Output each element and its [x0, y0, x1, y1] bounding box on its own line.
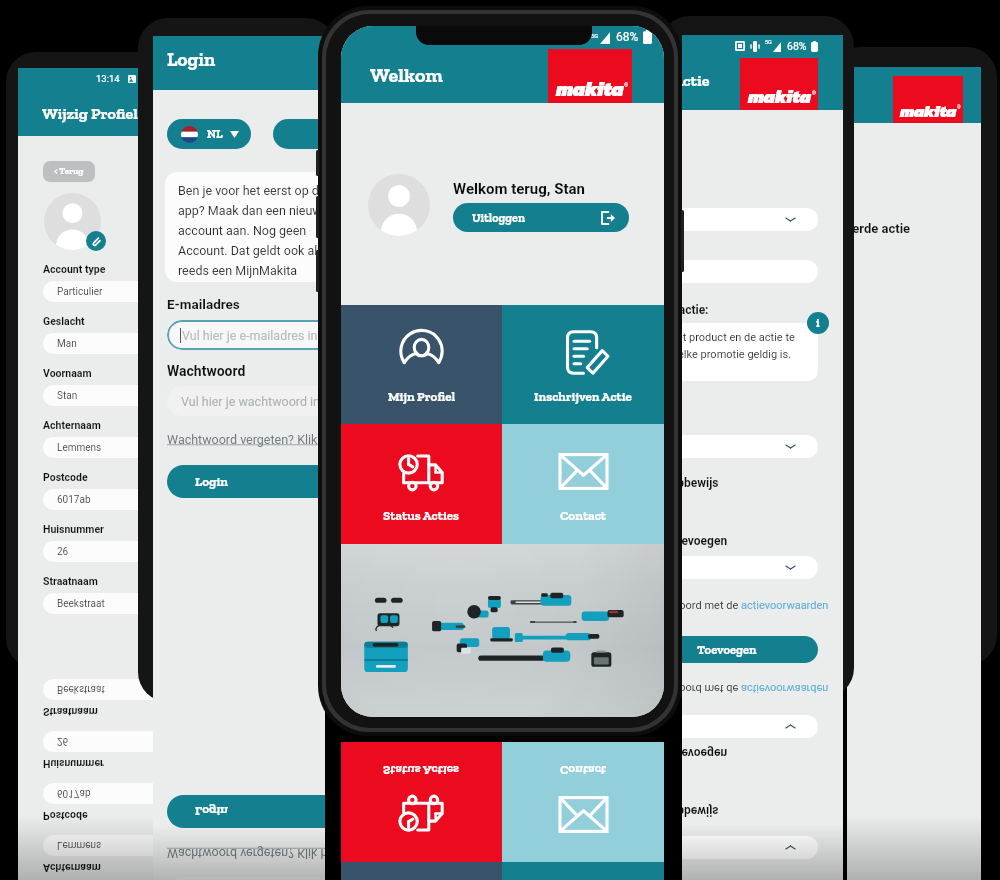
button[interactable]: [682, 208, 818, 231]
staticText: Adres toevoegen: [682, 534, 728, 548]
staticText: 68%: [616, 30, 639, 44]
staticText: Ik ga akkoord met de: [682, 682, 741, 695]
staticText: Inschrijven Actie: [682, 71, 710, 90]
staticText: Postcode: [43, 810, 88, 822]
button[interactable]: [682, 435, 818, 458]
button[interactable]: < Terug: [43, 161, 95, 182]
button[interactable]: NL: [167, 119, 251, 149]
staticText: Kies de actie:: [682, 303, 709, 317]
staticText: Beekstraat: [57, 683, 105, 695]
staticText: Voornaam: [43, 367, 92, 379]
staticText: NL: [207, 127, 223, 141]
button[interactable]: Mijn Profiel: [341, 305, 502, 424]
staticText: ®: [957, 105, 961, 110]
staticText: 26: [57, 546, 69, 558]
button[interactable]: Vul hier je e-mailadres in: [167, 320, 325, 350]
button[interactable]: Login: [167, 465, 325, 498]
button[interactable]: Lemmens: [43, 835, 153, 856]
button[interactable]: [682, 260, 818, 283]
button[interactable]: 26: [43, 731, 153, 752]
button[interactable]: 6017ab: [43, 783, 153, 804]
staticText: Uitloggen: [472, 211, 526, 225]
button[interactable]: 26: [43, 541, 153, 562]
staticText: Geslacht: [43, 315, 85, 327]
staticText: Straatnaam: [43, 706, 98, 718]
staticText: Wachtwoord: [167, 363, 246, 379]
staticText: Toevoegen: [697, 642, 757, 657]
button[interactable]: Status Acties: [341, 742, 502, 862]
button[interactable]: Contact: [502, 424, 664, 544]
staticText: Postcode: [43, 471, 88, 483]
button[interactable]: Lemmens: [43, 437, 153, 458]
button[interactable]: Contact: [502, 742, 664, 862]
staticText: 68%: [787, 40, 807, 52]
staticText: Kies het product en de actie te zien wel…: [682, 331, 808, 361]
button[interactable]: Man: [43, 333, 153, 354]
staticText: Contact: [560, 762, 606, 778]
staticText: Huisnummer: [43, 758, 104, 770]
staticText: Contact: [560, 508, 606, 524]
button[interactable]: [682, 836, 818, 859]
staticText: Account type: [43, 263, 106, 275]
button[interactable]: [682, 556, 818, 579]
button[interactable]: Beekstraat: [43, 593, 153, 614]
button[interactable]: Wachtwoord vergeten? Klik hier: [167, 432, 325, 447]
button[interactable]: Stan: [43, 385, 153, 406]
button[interactable]: Toevoegen: [682, 636, 818, 663]
staticText: Stan: [57, 390, 78, 402]
staticText: Login: [167, 48, 216, 71]
staticText: Beekstraat: [57, 598, 105, 610]
button[interactable]: Login: [167, 795, 325, 828]
button[interactable]: Wijzig foto: [86, 231, 106, 251]
button[interactable]: Wachtwoord vergeten? Klik hier: [167, 846, 325, 861]
staticText: Ben je voor het eerst op deze app? Maak …: [178, 183, 325, 282]
staticText: Man: [57, 338, 77, 350]
staticText: Lemmens: [57, 442, 102, 454]
staticText: makita: [900, 99, 957, 124]
staticText: Status Acties: [383, 508, 460, 524]
staticText: makita: [556, 74, 624, 104]
staticText: < Terug: [54, 166, 84, 177]
staticText: Aankoopbewijs: [682, 804, 719, 818]
staticText: Achternaam: [43, 862, 101, 874]
button[interactable]: 6017ab: [43, 489, 153, 510]
staticText: Adres toevoegen: [682, 746, 728, 760]
staticText: Lemmens: [57, 839, 102, 851]
staticText: Particulier: [57, 286, 103, 298]
staticText: ®: [812, 90, 816, 96]
staticText: Huisnummer: [43, 523, 104, 535]
button[interactable]: Beekstraat: [43, 679, 153, 700]
button[interactable]: Uitloggen: [453, 203, 629, 232]
button[interactable]: Informatie: [807, 312, 829, 334]
staticText: Geselecteerde actie: [847, 221, 911, 236]
staticText: 5G: [765, 39, 772, 45]
staticText: 26: [57, 735, 69, 747]
staticText: Ik ga akkoord met de: [682, 599, 741, 612]
staticText: makita: [748, 83, 811, 111]
staticText: Vul hier je wachtwoord in: [181, 394, 321, 409]
staticText: Wijzig Profiel: [42, 104, 138, 123]
button[interactable]: [682, 715, 818, 738]
staticText: Achternaam: [43, 419, 101, 431]
button[interactable]: Particulier: [43, 281, 153, 302]
staticText: Login: [195, 803, 229, 819]
button[interactable]: Inschrijven Actie: [502, 305, 664, 424]
staticText: 6017ab: [57, 494, 91, 506]
staticText: Mijn Profiel: [388, 389, 456, 405]
staticText: i: [816, 316, 820, 330]
staticText: Status Acties: [383, 762, 460, 778]
staticText: 6017ab: [57, 787, 91, 799]
staticText: Login: [195, 474, 229, 490]
staticText: Welkom: [370, 63, 443, 87]
staticText: Straatnaam: [43, 575, 98, 587]
button[interactable]: Status Acties: [341, 424, 502, 544]
button[interactable]: Vul hier je wachtwoord in: [167, 386, 325, 416]
staticText: 5G: [591, 32, 599, 39]
button[interactable]: [273, 119, 325, 149]
button[interactable]: actievoorwaarden: [741, 599, 829, 612]
staticText: Welkom terug, Stan: [453, 180, 585, 198]
button[interactable]: actievoorwaarden: [741, 682, 829, 695]
